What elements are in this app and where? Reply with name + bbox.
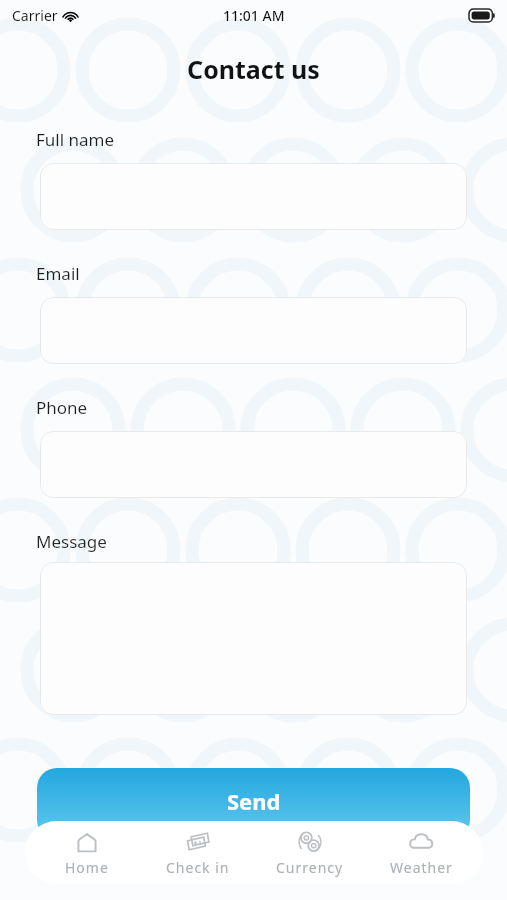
- staticText: Email: [36, 262, 80, 285]
- button[interactable]: Currency: [260, 829, 360, 877]
- staticText: Home: [65, 858, 109, 877]
- staticText: Currency: [276, 858, 344, 877]
- button[interactable]: Weather: [371, 829, 471, 877]
- button[interactable]: Home: [37, 829, 137, 877]
- staticText: Send: [227, 786, 281, 816]
- staticText: Message: [36, 530, 107, 553]
- button[interactable]: Email: [40, 297, 467, 364]
- staticText: 11:01 AM: [223, 6, 285, 25]
- staticText: Check in: [166, 858, 230, 877]
- staticText: Full name: [36, 128, 115, 151]
- button[interactable]: Send: [37, 768, 470, 840]
- staticText: Phone: [36, 396, 88, 419]
- staticText: Carrier: [12, 6, 58, 25]
- button[interactable]: Phone: [40, 431, 467, 498]
- staticText: Weather: [390, 858, 453, 877]
- button[interactable]: Check in: [148, 829, 248, 877]
- button[interactable]: Full name: [40, 163, 467, 230]
- staticText: Contact us: [0, 52, 507, 86]
